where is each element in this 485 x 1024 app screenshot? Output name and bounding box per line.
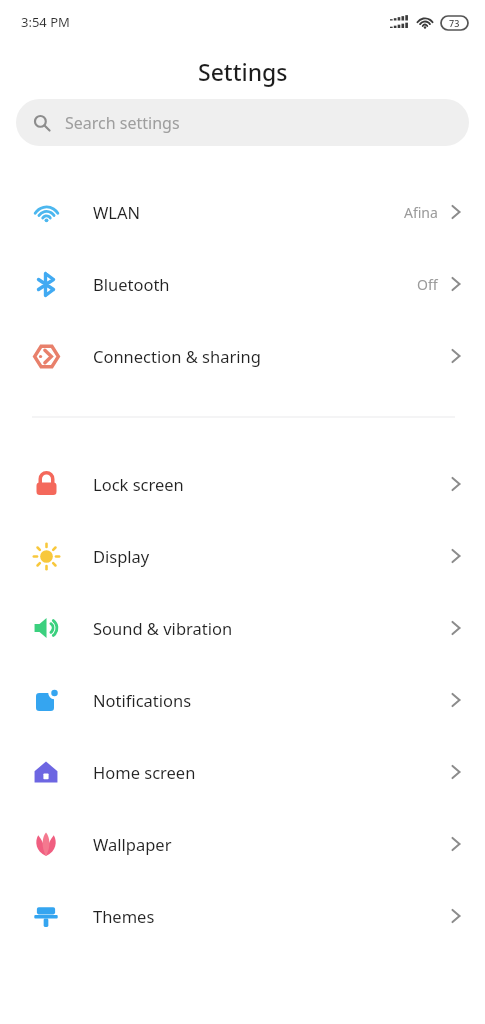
button[interactable]: Lock screen [0, 448, 485, 520]
button[interactable]: Display [0, 520, 485, 592]
staticText: Afina [404, 203, 438, 222]
staticText: Display [93, 545, 150, 567]
button[interactable]: Notifications [0, 664, 485, 736]
staticText: Sound & vibration [93, 617, 233, 639]
button[interactable]: Themes [0, 880, 485, 952]
staticText: Notifications [93, 689, 192, 711]
button[interactable]: Home screen [0, 736, 485, 808]
staticText: Home screen [93, 761, 196, 783]
staticText: Settings [198, 56, 288, 87]
staticText: Off [417, 275, 438, 294]
staticText: Search settings [65, 112, 180, 134]
staticText: 73 [449, 17, 460, 29]
button[interactable]: Wallpaper [0, 808, 485, 880]
button[interactable]: Sound & vibration [0, 592, 485, 664]
button[interactable]: WLAN [0, 176, 485, 248]
staticText: Lock screen [93, 473, 184, 495]
button[interactable]: Bluetooth [0, 248, 485, 320]
button[interactable]: Search settings [16, 99, 469, 146]
staticText: Themes [93, 905, 155, 927]
staticText: Connection & sharing [93, 345, 261, 367]
staticText: Bluetooth [93, 273, 170, 295]
staticText: Wallpaper [93, 833, 172, 855]
button[interactable]: Connection & sharing [0, 320, 485, 392]
staticText: WLAN [93, 201, 141, 223]
staticText: 3:54 PM [21, 13, 70, 31]
